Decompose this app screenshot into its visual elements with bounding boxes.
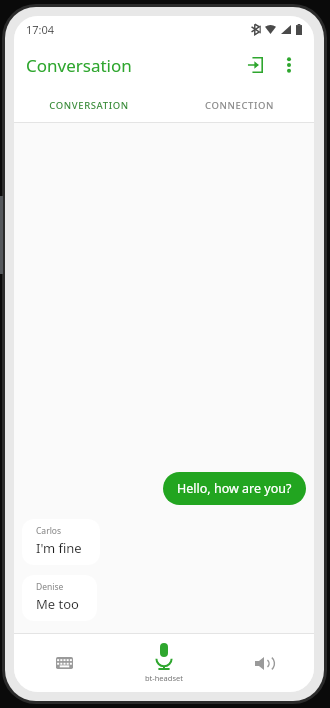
staticText: bt-headset [145,673,183,683]
button[interactable]: CONNECTION [164,88,314,122]
button[interactable]: More options [276,52,302,78]
staticText: Denise [36,581,64,593]
button[interactable]: Connect [240,50,270,80]
staticText: Me too [36,595,79,613]
button[interactable]: Speaker [214,634,314,692]
staticText: Hello, how are you? [177,480,292,497]
staticText: Conversation [26,54,132,77]
button[interactable]: Keyboard [14,634,114,692]
button[interactable]: CONVERSATION [14,88,164,122]
staticText: Carlos [36,525,62,537]
staticText: 17:04 [26,22,55,37]
button[interactable]: Hello, how are you? [163,472,306,505]
staticText: I'm fine [36,539,82,557]
button[interactable]: Denise [22,575,97,621]
staticText: CONNECTION [205,99,274,112]
button[interactable]: Microphone bt-headset [114,634,214,692]
button[interactable]: Carlos [22,519,100,565]
staticText: CONVERSATION [49,99,129,112]
